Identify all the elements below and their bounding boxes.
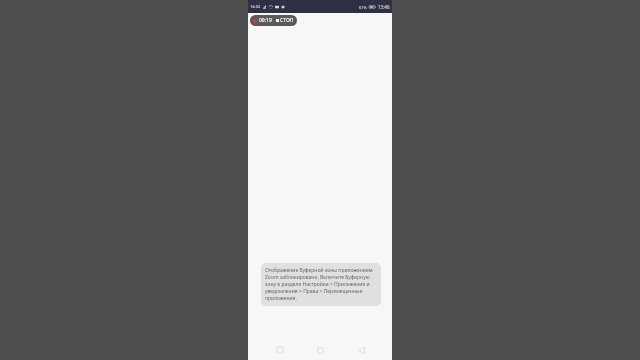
staticText: Отображение Буферной зоны приложением Zo… <box>265 267 377 302</box>
button[interactable]: Home <box>311 341 329 359</box>
staticText: 00:19 <box>259 17 272 24</box>
button[interactable]: 00:19 <box>250 15 297 26</box>
staticText: 61% <box>359 5 367 10</box>
button[interactable]: Back <box>352 341 370 359</box>
staticText: СТОП <box>280 17 294 24</box>
staticText: 14:02 <box>250 4 261 9</box>
button[interactable]: Отображение Буферной зоны приложением Zo… <box>261 263 381 306</box>
staticText: 13:46 <box>378 4 390 10</box>
button[interactable]: Recents <box>271 341 289 359</box>
